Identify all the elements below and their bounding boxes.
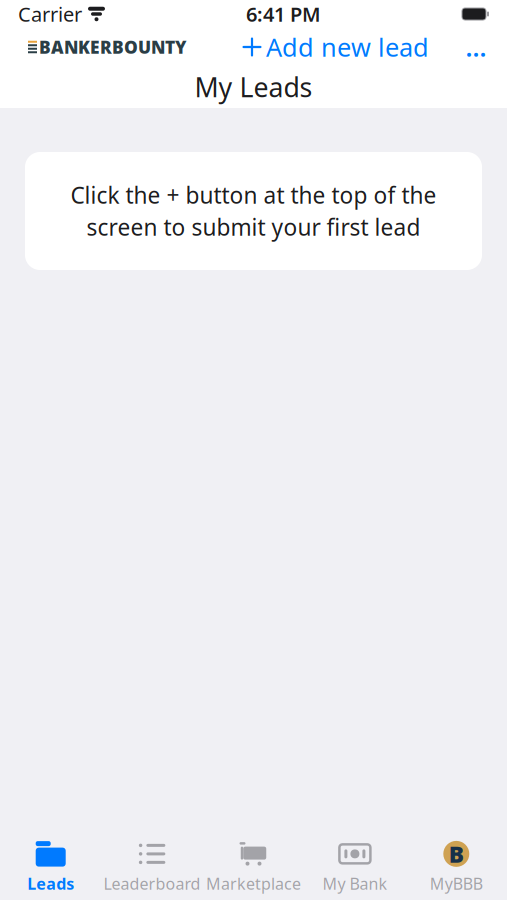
staticText: Add new lead	[266, 30, 429, 64]
staticText: BANKERBOUNTY	[39, 35, 187, 58]
staticText: Carrier	[18, 1, 82, 27]
button[interactable]: Leads	[0, 838, 101, 896]
staticText: Marketplace	[206, 873, 301, 894]
staticText: screen to submit your first lead	[86, 212, 420, 242]
staticText: MyBBB	[430, 873, 483, 894]
button[interactable]: Leaderboard	[101, 838, 203, 896]
staticText: B	[449, 839, 464, 869]
staticText: My Bank	[322, 873, 387, 894]
button[interactable]: My Bank	[304, 838, 406, 896]
button[interactable]: Marketplace	[203, 838, 304, 896]
staticText: Leaderboard	[104, 873, 201, 894]
button[interactable]: Add new lead	[242, 26, 429, 68]
staticText: 6:41 PM	[246, 1, 321, 27]
staticText: My Leads	[194, 69, 312, 105]
staticText: Click the + button at the top of the	[70, 180, 436, 210]
staticText: Leads	[27, 873, 74, 894]
button[interactable]: B	[406, 838, 507, 896]
staticText: ...	[465, 30, 486, 64]
button[interactable]: More options	[461, 32, 491, 62]
